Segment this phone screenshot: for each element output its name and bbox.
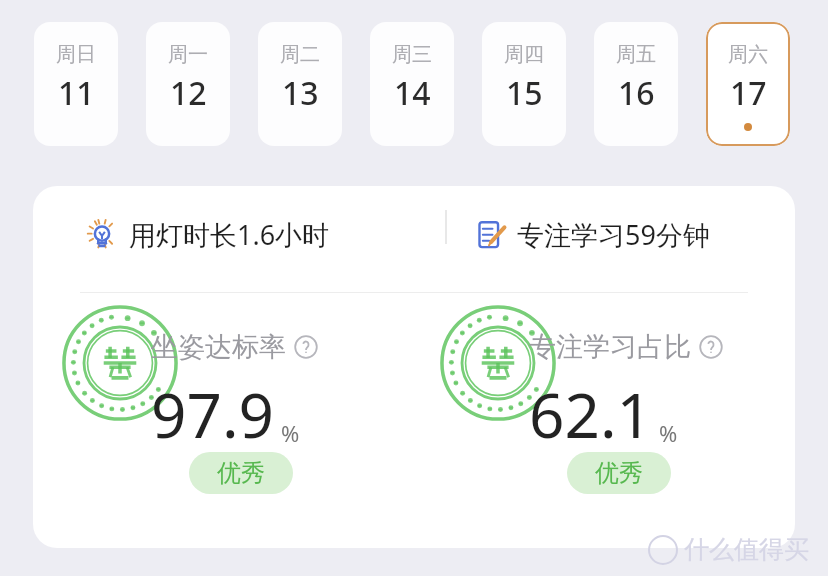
- staticText: 优秀: [217, 458, 265, 488]
- staticText: 17: [730, 71, 767, 115]
- staticText: %: [659, 418, 678, 448]
- button[interactable]: 周一: [146, 22, 230, 146]
- button[interactable]: 坐姿达标率: [151, 330, 318, 364]
- staticText: 专注学习59分钟: [517, 216, 710, 253]
- staticText: 97.9: [151, 372, 275, 456]
- staticText: 15: [506, 71, 543, 115]
- button[interactable]: 周六: [706, 22, 790, 146]
- button[interactable]: 专注学习占比: [529, 330, 723, 364]
- staticText: 专注学习占比: [529, 330, 691, 364]
- staticText: 周二: [280, 42, 320, 67]
- staticText: 周五: [616, 42, 656, 67]
- staticText: 62.1: [529, 372, 653, 456]
- staticText: 12: [170, 71, 207, 115]
- staticText: 13: [282, 71, 319, 115]
- staticText: 14: [394, 71, 431, 115]
- button[interactable]: 优秀: [189, 452, 293, 494]
- staticText: 坐姿达标率: [151, 330, 286, 364]
- staticText: 16: [618, 71, 655, 115]
- button[interactable]: 说明: [699, 335, 723, 359]
- button[interactable]: 周二: [258, 22, 342, 146]
- staticText: %: [281, 418, 300, 448]
- staticText: 11: [58, 71, 95, 115]
- button[interactable]: 周五: [594, 22, 678, 146]
- staticText: 周四: [504, 42, 544, 67]
- button[interactable]: 优秀: [567, 452, 671, 494]
- button[interactable]: 周日: [34, 22, 118, 146]
- staticText: 周六: [728, 42, 768, 67]
- staticText: 优秀: [595, 458, 643, 488]
- staticText: 什么值得买: [684, 534, 809, 565]
- button[interactable]: 用灯时长1.6小时: [33, 216, 413, 253]
- button[interactable]: 说明: [294, 335, 318, 359]
- button[interactable]: 周四: [482, 22, 566, 146]
- staticText: 周一: [168, 42, 208, 67]
- staticText: 用灯时长1.6小时: [129, 216, 330, 253]
- staticText: 周三: [392, 42, 432, 67]
- button[interactable]: 专注学习59分钟: [413, 216, 710, 253]
- button[interactable]: 周三: [370, 22, 454, 146]
- staticText: 周日: [56, 42, 96, 67]
